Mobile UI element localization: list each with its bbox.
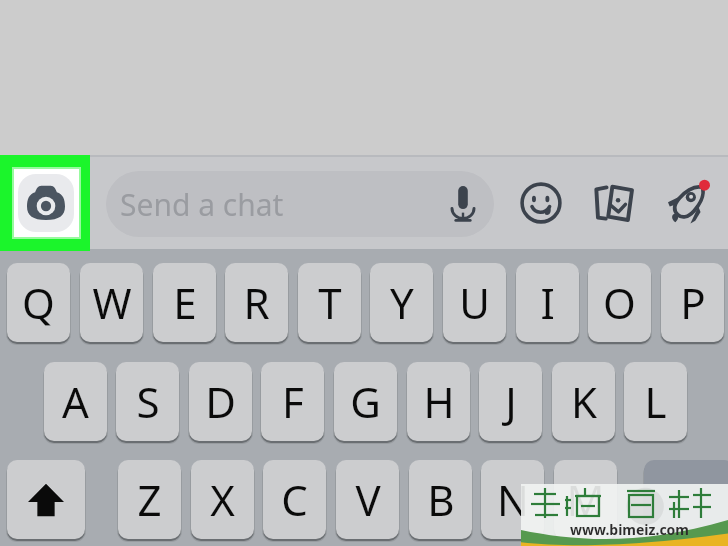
staticText: O — [603, 274, 636, 331]
staticText: V — [355, 471, 381, 528]
button[interactable]: R — [225, 263, 288, 342]
staticText: J — [505, 373, 517, 430]
button[interactable]: G — [334, 362, 397, 441]
button[interactable]: Camera — [0, 155, 90, 251]
staticText: E — [173, 274, 197, 331]
staticText: Send a chat — [120, 184, 284, 225]
staticText: Q — [22, 274, 55, 331]
staticText: Y — [390, 274, 414, 331]
staticText: H — [423, 373, 455, 430]
button[interactable]: X — [191, 460, 254, 539]
button[interactable]: M — [554, 460, 617, 539]
staticText: G — [350, 373, 381, 430]
button[interactable]: Z — [118, 460, 181, 539]
staticText: A — [62, 373, 89, 430]
button[interactable]: K — [552, 362, 615, 441]
button[interactable]: Memories — [582, 175, 641, 231]
staticText: C — [281, 471, 308, 528]
button[interactable]: Y — [370, 263, 433, 342]
button[interactable]: Voice note — [441, 182, 485, 226]
button[interactable]: T — [298, 263, 361, 342]
button[interactable]: L — [624, 362, 687, 441]
staticText: L — [644, 373, 667, 430]
staticText: Z — [137, 471, 162, 528]
button[interactable]: P — [661, 263, 724, 342]
staticText: N — [497, 471, 529, 528]
button[interactable]: U — [443, 263, 506, 342]
staticText: I — [540, 274, 555, 331]
button[interactable]: Shift — [7, 460, 85, 539]
button[interactable]: Rocket — [660, 173, 716, 231]
staticText: W — [92, 274, 132, 331]
button[interactable]: V — [336, 460, 399, 539]
staticText: U — [459, 274, 490, 331]
button[interactable]: W — [80, 263, 143, 342]
button[interactable]: Q — [7, 263, 70, 342]
button[interactable]: A — [44, 362, 107, 441]
staticText: M — [566, 471, 605, 528]
staticText: R — [243, 274, 270, 331]
staticText: D — [205, 373, 236, 430]
button[interactable]: I — [516, 263, 579, 342]
staticText: K — [571, 373, 597, 430]
staticText: P — [680, 274, 706, 331]
button[interactable]: Send a chat — [106, 171, 494, 237]
button[interactable]: B — [409, 460, 472, 539]
button[interactable]: H — [407, 362, 470, 441]
staticText: www.bimeiz.com — [570, 520, 690, 539]
staticText: B — [427, 471, 455, 528]
button[interactable]: J — [479, 362, 542, 441]
staticText: S — [136, 373, 160, 430]
staticText: F — [282, 373, 304, 430]
button[interactable]: C — [263, 460, 326, 539]
button[interactable]: S — [116, 362, 179, 441]
button[interactable]: Backspace — [644, 460, 728, 539]
button[interactable]: E — [153, 263, 216, 342]
button[interactable]: O — [588, 263, 651, 342]
staticText: T — [318, 274, 342, 331]
button[interactable]: D — [189, 362, 252, 441]
button[interactable]: N — [481, 460, 544, 539]
button[interactable]: Stickers — [513, 175, 569, 231]
staticText: X — [210, 471, 235, 528]
button[interactable]: F — [261, 362, 324, 441]
